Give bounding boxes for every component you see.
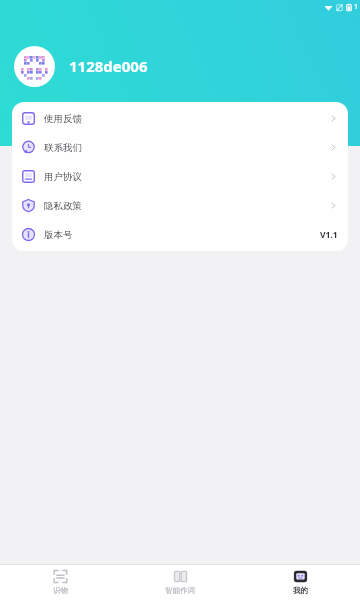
staticText: 我的 — [293, 586, 308, 595]
staticText: 隐私政策 — [44, 200, 82, 212]
button[interactable]: 识物 — [0, 565, 120, 600]
staticText: 用户协议 — [44, 171, 82, 183]
staticText: 识物 — [53, 586, 68, 595]
staticText: 联系我们 — [44, 142, 82, 154]
staticText: 智能作词 — [165, 586, 195, 595]
staticText: V1.1 — [320, 229, 338, 241]
button[interactable]: 版本号 — [12, 220, 348, 249]
button[interactable]: 用户协议 — [12, 162, 348, 191]
button[interactable]: 使用反馈 — [12, 104, 348, 133]
staticText: 版本号 — [44, 229, 73, 241]
button[interactable]: 隐私政策 — [12, 191, 348, 220]
other: 识物 — [53, 569, 68, 584]
button[interactable]: 我的 — [240, 565, 360, 600]
staticText: 使用反馈 — [44, 113, 82, 125]
button[interactable]: 联系我们 — [12, 133, 348, 162]
staticText: 1 — [354, 2, 359, 12]
other: 智能作词 — [173, 569, 188, 584]
button[interactable]: 智能作词 — [120, 565, 240, 600]
other: 我的 — [293, 569, 308, 584]
staticText: 1128de006 — [69, 56, 148, 76]
